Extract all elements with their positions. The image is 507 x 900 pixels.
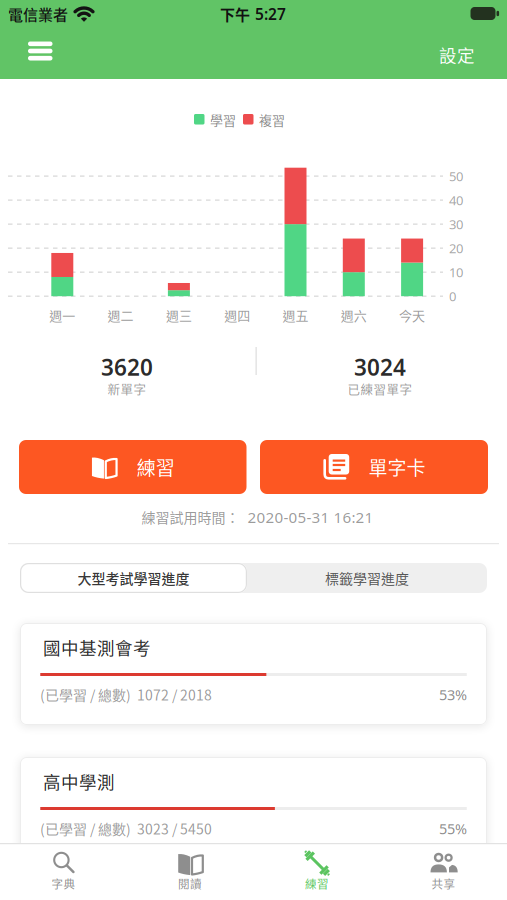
button[interactable]: 練習 <box>267 844 367 900</box>
staticText: 練習試用時間： <box>141 507 239 527</box>
button[interactable]: 標籤學習進度 <box>247 563 487 593</box>
staticText: 共享 <box>432 875 456 892</box>
staticText: 50 <box>449 167 463 185</box>
button[interactable]: 設定 <box>422 36 492 72</box>
staticText: 週五 <box>282 306 308 324</box>
button[interactable]: 單字卡 <box>260 440 488 494</box>
staticText: 學習 <box>210 110 236 129</box>
staticText: 單字卡 <box>368 453 425 481</box>
staticText: 5:27 <box>255 3 286 24</box>
staticText: 新單字 <box>107 380 146 398</box>
staticText: 週四 <box>224 306 250 324</box>
staticText: 練習 <box>305 875 329 892</box>
staticText: 設定 <box>439 42 475 67</box>
staticText: 10 <box>449 263 463 281</box>
button[interactable]: 國中基測會考 <box>20 623 487 725</box>
staticText: 週六 <box>341 306 367 324</box>
staticText: 字典 <box>51 875 75 892</box>
staticText: 下午 <box>220 3 250 25</box>
staticText: 53% <box>439 685 467 704</box>
staticText: 週二 <box>108 306 134 324</box>
staticText: (已學習 / 總數) 1072 / 2018 <box>40 684 212 705</box>
staticText: 國中基測會考 <box>43 634 151 660</box>
staticText: 高中學測 <box>43 768 115 794</box>
staticText: 週一 <box>49 306 75 324</box>
staticText: 已練習單字 <box>347 380 412 398</box>
button[interactable]: 高中學測 <box>20 757 487 859</box>
staticText: 電信業者 <box>8 3 68 25</box>
staticText: 0 <box>449 287 456 305</box>
staticText: 40 <box>449 191 463 209</box>
staticText: (已學習 / 總數) 3023 / 5450 <box>40 818 212 839</box>
staticText: 閱讀 <box>178 875 202 892</box>
staticText: 複習 <box>259 110 285 129</box>
button[interactable]: 字典 <box>13 844 113 900</box>
staticText: 20 <box>449 239 463 257</box>
staticText: 標籤學習進度 <box>325 568 409 588</box>
button[interactable]: 共享 <box>394 844 494 900</box>
button[interactable]: 閱讀 <box>140 844 240 900</box>
staticText: 2020-05-31 16:21 <box>247 507 373 527</box>
button[interactable]: 練習 <box>19 440 246 494</box>
staticText: 大型考試學習進度 <box>77 568 189 588</box>
staticText: 練習 <box>137 453 175 481</box>
staticText: 55% <box>439 819 467 838</box>
button[interactable]: 大型考試學習進度 <box>20 563 247 593</box>
staticText: 3620 <box>101 352 153 382</box>
staticText: 今天 <box>399 306 425 324</box>
button[interactable]: Menu <box>18 33 62 69</box>
staticText: 30 <box>449 215 463 233</box>
staticText: 3024 <box>354 352 406 382</box>
staticText: 週三 <box>166 306 192 324</box>
